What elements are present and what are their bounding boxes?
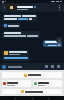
button[interactable]: Back bbox=[14, 97, 17, 100]
button[interactable]: Camera bbox=[50, 64, 55, 69]
button[interactable] bbox=[2, 50, 29, 56]
button[interactable]: Scroll to bottom bbox=[56, 37, 62, 43]
button[interactable]: Voice message bbox=[56, 64, 61, 69]
button[interactable] bbox=[33, 80, 62, 87]
button[interactable] bbox=[2, 80, 31, 87]
button[interactable]: Emoji bbox=[2, 65, 6, 69]
button[interactable]: Recents bbox=[47, 97, 50, 100]
button[interactable] bbox=[2, 14, 38, 21]
button[interactable] bbox=[2, 31, 40, 38]
button[interactable]: Chat avatar bbox=[8, 4, 15, 11]
button[interactable]: Home bbox=[31, 97, 34, 100]
button[interactable] bbox=[2, 89, 62, 94]
button[interactable] bbox=[2, 72, 62, 78]
button[interactable] bbox=[43, 40, 62, 47]
button[interactable] bbox=[2, 23, 21, 28]
button[interactable]: More options bbox=[57, 5, 62, 10]
button[interactable]: Back bbox=[2, 5, 7, 10]
button[interactable]: Attach bbox=[44, 64, 49, 69]
button[interactable] bbox=[2, 56, 30, 61]
